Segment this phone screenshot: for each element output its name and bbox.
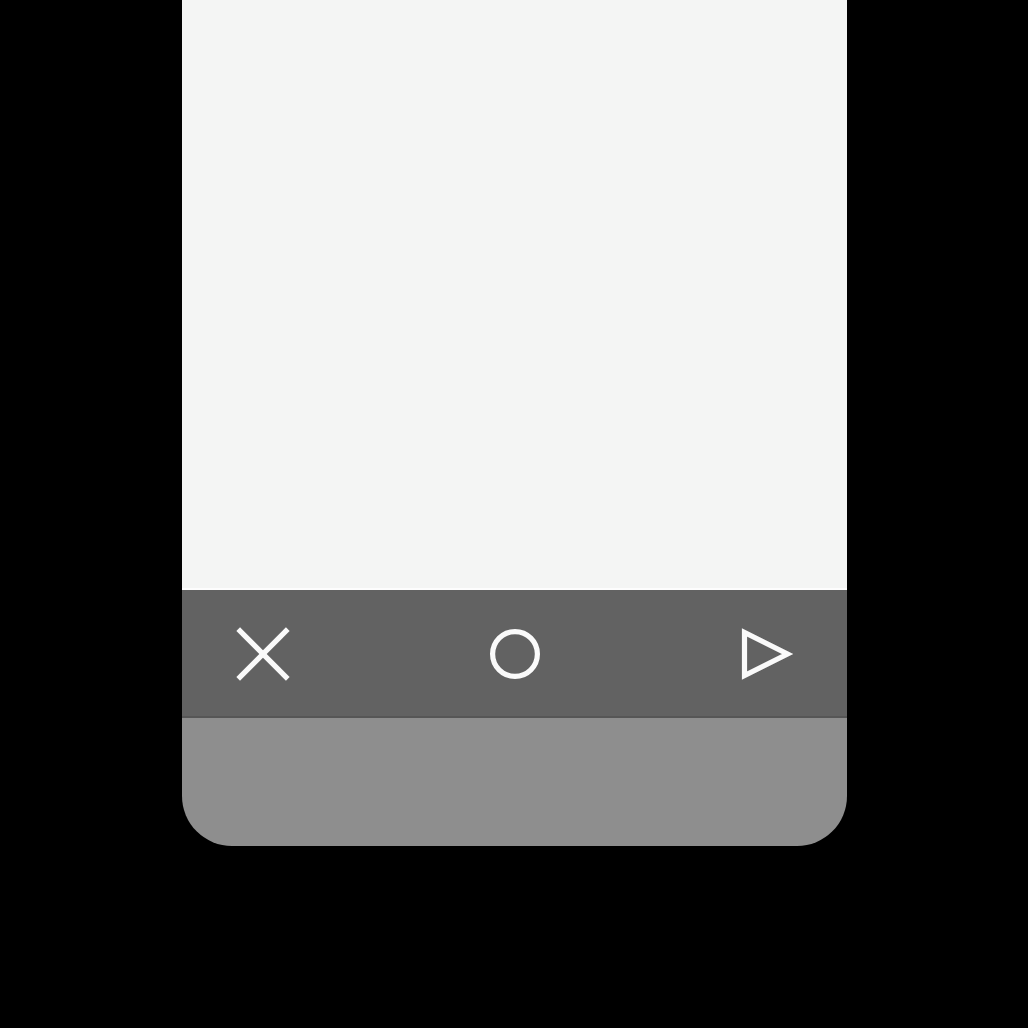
button[interactable] <box>713 600 820 707</box>
button[interactable] <box>461 600 568 707</box>
button[interactable] <box>209 600 316 707</box>
